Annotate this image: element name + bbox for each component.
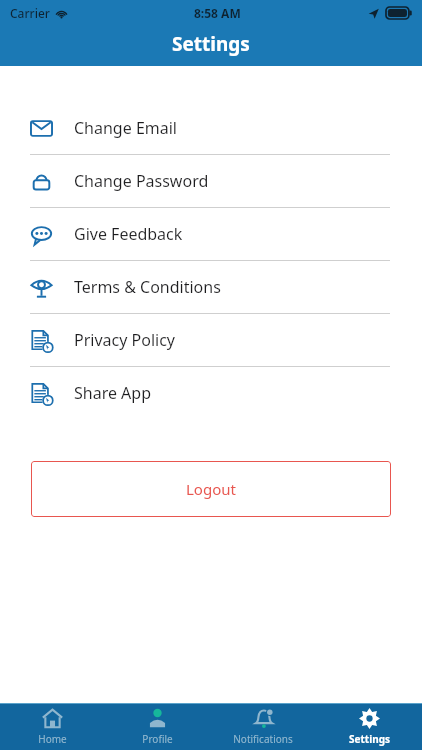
staticText: 8:58 AM — [194, 5, 241, 21]
staticText: Notifications — [233, 732, 293, 746]
staticText: Give Feedback — [74, 223, 183, 245]
staticText: Change Email — [74, 117, 177, 139]
staticText: Profile — [142, 732, 173, 746]
button[interactable]: Change Password — [0, 155, 422, 208]
staticText: Settings — [172, 31, 250, 57]
staticText: Settings — [349, 732, 390, 746]
staticText: Change Password — [74, 170, 209, 192]
button[interactable]: Home — [0, 703, 105, 750]
button[interactable]: Logout — [31, 461, 391, 517]
button[interactable]: Notifications — [210, 703, 316, 750]
button[interactable]: Profile — [105, 703, 210, 750]
button[interactable]: Change Email — [0, 102, 422, 155]
staticText: Home — [38, 732, 67, 746]
staticText: Share App — [74, 382, 152, 404]
button[interactable]: Share App — [0, 367, 422, 419]
button[interactable]: Give Feedback — [0, 208, 422, 261]
button[interactable]: Privacy Policy — [0, 314, 422, 367]
staticText: Carrier — [10, 5, 50, 21]
staticText: Privacy Policy — [74, 329, 175, 351]
button[interactable]: Terms & Conditions — [0, 261, 422, 314]
button[interactable]: Settings — [316, 703, 422, 750]
staticText: Terms & Conditions — [74, 276, 221, 298]
staticText: Logout — [186, 479, 236, 499]
